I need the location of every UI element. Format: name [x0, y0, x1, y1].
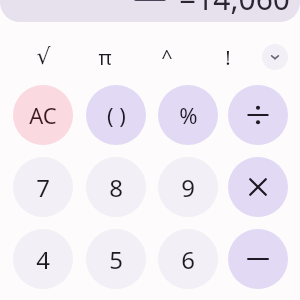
button[interactable]: 9 [158, 157, 218, 217]
button[interactable]: 8 [86, 157, 146, 217]
button[interactable]: ! [208, 37, 248, 77]
button[interactable]: ( ) [86, 85, 146, 145]
button[interactable]: 5 [86, 229, 146, 289]
staticText: 9 [181, 171, 195, 204]
button[interactable]: √ [23, 37, 63, 77]
button[interactable]: % [158, 85, 218, 145]
button[interactable]: 6 [158, 229, 218, 289]
staticText: 7 [36, 171, 50, 204]
staticText: 8 [109, 171, 123, 204]
staticText: ! [225, 44, 231, 71]
button[interactable]: AC [13, 85, 73, 145]
button[interactable]: π [85, 37, 125, 77]
button[interactable]: Divide [228, 85, 288, 145]
button[interactable]: Multiply [228, 157, 288, 217]
button[interactable]: 4 [13, 229, 73, 289]
staticText: 6 [181, 243, 195, 276]
button[interactable]: ^ [147, 36, 187, 76]
button[interactable]: Show more functions [262, 44, 288, 70]
staticText: AC [29, 100, 57, 130]
staticText: ( ) [107, 100, 126, 130]
staticText: ^ [161, 43, 173, 70]
staticText: =14,060 [179, 0, 290, 19]
staticText: 5 [109, 243, 123, 276]
staticText: % [179, 100, 198, 130]
button[interactable]: =14,060 [0, 0, 300, 22]
button[interactable]: 7 [13, 157, 73, 217]
button[interactable]: Subtract [228, 229, 288, 289]
staticText: 4 [36, 243, 50, 276]
staticText: √ [36, 44, 51, 70]
staticText: π [98, 44, 112, 71]
